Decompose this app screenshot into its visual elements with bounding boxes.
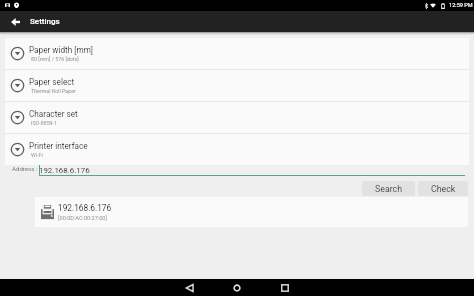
staticText: Thermal Roll Paper [31,88,76,94]
staticText: Character set [29,109,78,119]
staticText: Printer interface [29,141,88,151]
staticText: Search [375,184,403,194]
button[interactable]: Recent apps [271,284,299,296]
staticText: [00:0D:AC:00:27:00] [58,215,107,222]
staticText: Paper select [29,77,75,87]
staticText: 192.168.6.176 [58,203,112,213]
button[interactable]: Check [418,181,468,196]
button[interactable]: Paper select [5,70,469,101]
button[interactable]: Search [362,181,415,196]
button[interactable]: Character set [5,102,469,133]
staticText: Wi-Fi [31,152,43,158]
staticText: 12:59 PM [449,2,473,9]
staticText: Paper width [mm] [29,45,94,55]
staticText: Address : [12,165,38,172]
staticText: 80 [mm] / 576 [dots] [31,56,79,62]
button[interactable]: Home [223,284,251,296]
staticText: Settings [30,17,60,26]
staticText: ISO-8859-1 [31,120,58,126]
button[interactable]: Navigate up [10,11,20,32]
button[interactable]: Paper width [mm] [5,38,469,69]
button[interactable]: Printer interface [5,134,469,165]
button[interactable]: 192.168.6.176 [35,197,468,227]
staticText: 192.168.6.176 [39,166,90,175]
button[interactable]: Back [176,284,204,296]
staticText: Check [431,184,456,194]
